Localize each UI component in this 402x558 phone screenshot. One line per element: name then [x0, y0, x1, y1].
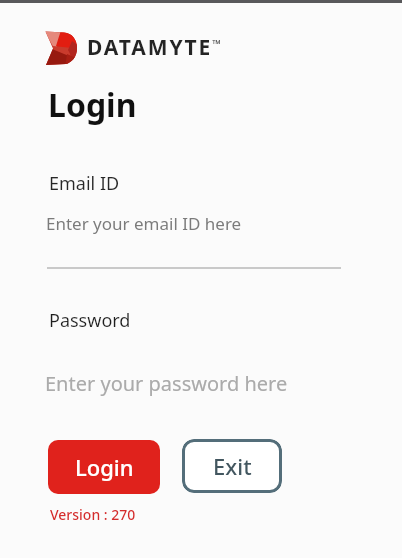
button[interactable]: Login: [48, 440, 160, 494]
staticText: Password: [49, 308, 131, 333]
staticText: DATAMYTE™: [87, 33, 223, 62]
staticText: Exit: [213, 451, 252, 481]
staticText: Email ID: [49, 171, 120, 196]
staticText: Login: [48, 83, 137, 127]
button[interactable]: Enter your email ID here: [46, 212, 242, 235]
staticText: Login: [75, 452, 134, 482]
staticText: Version : 270: [50, 505, 136, 524]
button[interactable]: Exit: [182, 439, 282, 493]
button[interactable]: Enter your password here: [45, 370, 288, 397]
